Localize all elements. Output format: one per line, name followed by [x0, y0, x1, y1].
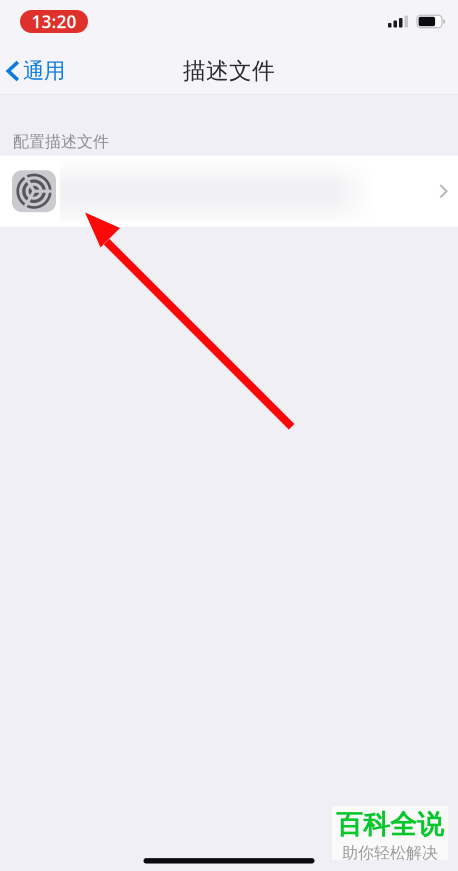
staticText: 助你轻松解决: [342, 843, 438, 863]
button[interactable]: 通用: [0, 47, 73, 95]
staticText: 通用: [23, 58, 65, 84]
staticText: 描述文件: [183, 57, 275, 85]
staticText: 13:20: [31, 10, 76, 33]
staticText: 配置描述文件: [13, 132, 109, 152]
button[interactable]: [0, 156, 458, 227]
staticText: 百科全说: [336, 808, 444, 841]
